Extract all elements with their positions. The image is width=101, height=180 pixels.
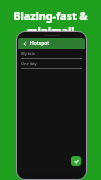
staticText: Hotspot [30,40,50,47]
button[interactable]: Confirm [71,156,81,166]
button[interactable]: One day [18,59,85,69]
staticText: My title [21,51,35,56]
button[interactable]: Back [18,38,85,49]
button[interactable]: My title [18,49,85,59]
staticText: Blazing-fast & minimal! [0,8,101,38]
button[interactable]: Back [21,40,28,47]
staticText: One day [21,61,37,66]
